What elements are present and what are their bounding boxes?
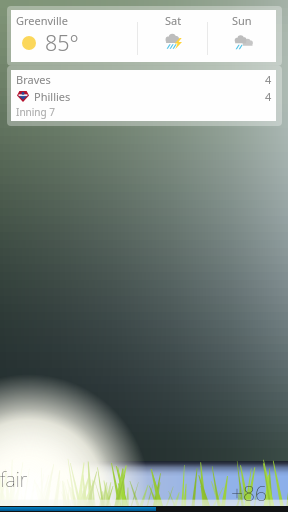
staticText: fair [0,466,28,493]
staticText: Braves [16,72,51,87]
staticText: Inning 7 [16,105,55,119]
staticText: +86 [231,479,267,508]
staticText: Sat [165,13,182,28]
button[interactable]: Sat [138,10,208,62]
staticText: 85° [45,28,79,57]
button[interactable]: Greenville [11,10,276,62]
staticText: Greenville [16,13,68,28]
button[interactable]: fair [0,461,288,512]
staticText: 4 [265,89,272,104]
staticText: Phillies [34,89,71,104]
staticText: 4 [265,72,272,87]
button[interactable]: Sun [208,10,276,62]
staticText: Sun [232,13,252,28]
button[interactable]: Braves [11,70,276,121]
